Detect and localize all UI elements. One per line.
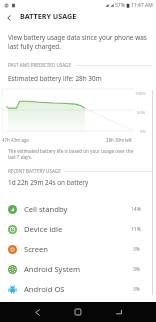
staticText: 1d 22h 29m 24s on battery bbox=[8, 178, 89, 187]
staticText: Android System bbox=[24, 264, 81, 274]
button[interactable]: Android OS bbox=[0, 279, 156, 299]
staticText: 3% bbox=[133, 266, 141, 273]
staticText: 11% bbox=[131, 226, 141, 233]
button[interactable]: Home bbox=[70, 304, 86, 320]
staticText: 3% bbox=[133, 246, 141, 253]
button[interactable]: Android System bbox=[0, 259, 156, 279]
button[interactable] bbox=[0, 299, 156, 319]
button[interactable]: Navigate up bbox=[0, 10, 18, 25]
staticText: Estimated battery life: 28h 30m bbox=[8, 74, 102, 83]
staticText: 47h 43m ago bbox=[2, 137, 29, 143]
staticText: Screen bbox=[24, 244, 49, 254]
staticText: Device idle bbox=[24, 224, 63, 234]
staticText: 28h 30m left bbox=[106, 137, 132, 143]
staticText: BATTERY USAGE bbox=[20, 11, 77, 21]
staticText: 57% bbox=[115, 2, 125, 9]
staticText: PAST AND PREDICTED USAGE bbox=[8, 62, 72, 68]
button[interactable]: Back bbox=[29, 304, 45, 320]
staticText: 50% bbox=[137, 110, 146, 116]
staticText: 11:47 AM bbox=[131, 2, 153, 9]
button[interactable]: Device idle bbox=[0, 219, 156, 239]
staticText: 14% bbox=[131, 206, 141, 213]
staticText: 0% bbox=[140, 129, 146, 135]
staticText: Android OS bbox=[24, 284, 65, 294]
staticText: RECENT BATTERY USAGE bbox=[8, 168, 61, 174]
staticText: 100% bbox=[135, 91, 146, 97]
staticText: The estimated battery life is based on y… bbox=[8, 148, 134, 161]
staticText: View battery usage data since your phone… bbox=[8, 33, 147, 51]
staticText: Cell standby bbox=[24, 204, 68, 214]
button[interactable]: Screen bbox=[0, 239, 156, 259]
button[interactable]: Recent apps bbox=[111, 304, 127, 320]
button[interactable]: Cell standby bbox=[0, 199, 156, 219]
staticText: 3% bbox=[133, 286, 141, 293]
